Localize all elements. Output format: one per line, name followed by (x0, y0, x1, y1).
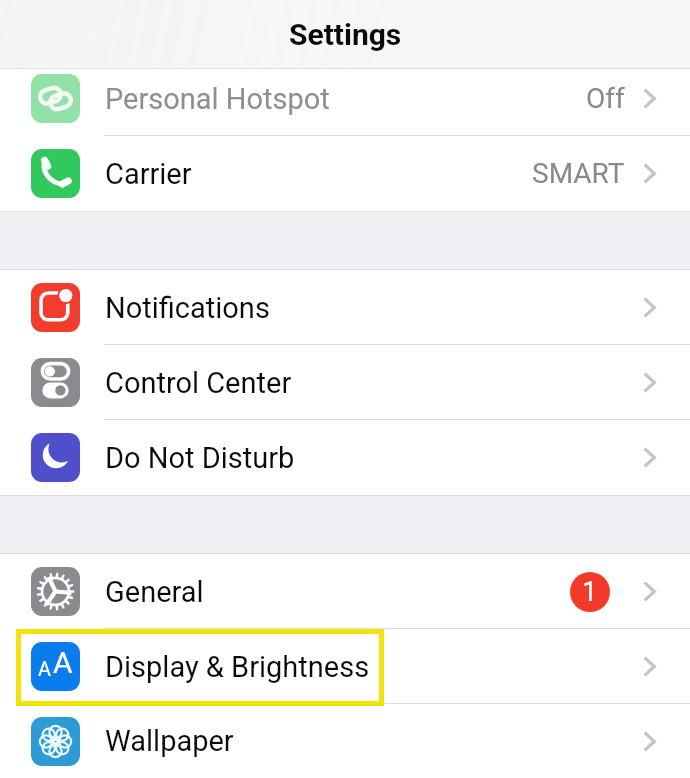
staticText: Wallpaper (105, 724, 234, 758)
button[interactable]: Wallpaper (0, 704, 690, 778)
button[interactable]: Carrier (0, 136, 690, 211)
staticText: SMART (532, 157, 625, 190)
button[interactable]: Do Not Disturb (0, 420, 690, 495)
staticText: Carrier (105, 157, 192, 191)
button[interactable]: Control Center (0, 345, 690, 420)
button[interactable]: Notifications (0, 270, 690, 345)
staticText: Do Not Disturb (105, 441, 295, 475)
button[interactable]: Personal Hotspot (0, 69, 690, 136)
staticText: Notifications (105, 291, 270, 325)
button[interactable]: A (0, 629, 690, 704)
staticText: Control Center (105, 366, 292, 400)
staticText: Personal Hotspot (105, 82, 330, 116)
staticText: General (105, 575, 204, 609)
staticText: Settings (289, 17, 402, 52)
staticText: A (38, 657, 52, 680)
button[interactable]: General (0, 554, 690, 629)
staticText: Off (586, 82, 625, 115)
staticText: A (53, 645, 73, 680)
staticText: 1 (582, 576, 598, 608)
staticText: Display & Brightness (105, 650, 370, 684)
